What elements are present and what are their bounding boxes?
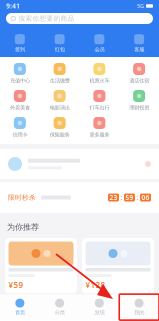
- button[interactable]: 信用卡: [0, 116, 40, 139]
- button[interactable]: 充值中心: [0, 62, 40, 85]
- button[interactable]: 限时秒杀: [0, 182, 159, 213]
- staticText: 首页: [15, 309, 25, 316]
- button[interactable]: 酒店住宿: [119, 62, 159, 85]
- staticText: 06: [141, 193, 149, 202]
- button[interactable]: 红包: [40, 34, 80, 53]
- button[interactable]: 签到: [0, 34, 40, 53]
- button[interactable]: 生活缴费: [40, 62, 80, 85]
- button[interactable]: ¥128: [82, 238, 154, 294]
- button[interactable]: 更多服务: [79, 116, 119, 139]
- staticText: 更多服务: [89, 131, 109, 138]
- staticText: 机票火车: [89, 77, 109, 84]
- button[interactable]: ¥59: [5, 238, 77, 294]
- staticText: ¥59: [8, 279, 23, 290]
- button[interactable]: 外卖美食: [0, 89, 40, 112]
- staticText: 9:41: [6, 2, 20, 10]
- staticText: 保险服务: [50, 131, 70, 138]
- staticText: :: [136, 193, 138, 202]
- staticText: 我的: [134, 309, 144, 316]
- staticText: 分类: [55, 309, 65, 316]
- staticText: 红包: [55, 46, 65, 53]
- staticText: 电影演出: [50, 104, 70, 111]
- staticText: 客服: [134, 46, 144, 53]
- staticText: 理财投资: [129, 104, 149, 111]
- staticText: 为你推荐: [7, 222, 39, 232]
- button[interactable]: 首页: [0, 294, 40, 320]
- button[interactable]: 搜索你想要的商品: [6, 13, 153, 24]
- staticText: 搜索你想要的商品: [18, 14, 74, 23]
- staticText: 打车出行: [89, 104, 109, 111]
- staticText: 签到: [15, 46, 25, 53]
- button[interactable]: 发现: [79, 294, 119, 320]
- staticText: 发现: [94, 309, 104, 316]
- staticText: 信用卡: [12, 131, 27, 138]
- button[interactable]: 理财投资: [119, 89, 159, 112]
- staticText: 限时秒杀: [8, 193, 36, 202]
- staticText: 酒店住宿: [129, 77, 149, 84]
- staticText: :: [120, 193, 122, 202]
- button[interactable]: 打车出行: [79, 89, 119, 112]
- staticText: 5G: [137, 2, 144, 10]
- staticText: 会员: [94, 46, 104, 53]
- button[interactable]: 保险服务: [40, 116, 80, 139]
- button[interactable]: 电影演出: [40, 89, 80, 112]
- staticText: 充值中心: [10, 77, 30, 84]
- staticText: 生活缴费: [50, 77, 70, 84]
- button[interactable]: 会员: [79, 34, 119, 53]
- staticText: 外卖美食: [10, 104, 30, 111]
- button[interactable]: [0, 149, 159, 179]
- staticText: 23: [109, 193, 117, 202]
- staticText: 59: [125, 193, 133, 202]
- button[interactable]: 机票火车: [79, 62, 119, 85]
- staticText: ¥128: [85, 279, 105, 290]
- button[interactable]: 分类: [40, 294, 80, 320]
- button[interactable]: 客服: [119, 34, 159, 53]
- button[interactable]: 我的: [119, 294, 159, 320]
